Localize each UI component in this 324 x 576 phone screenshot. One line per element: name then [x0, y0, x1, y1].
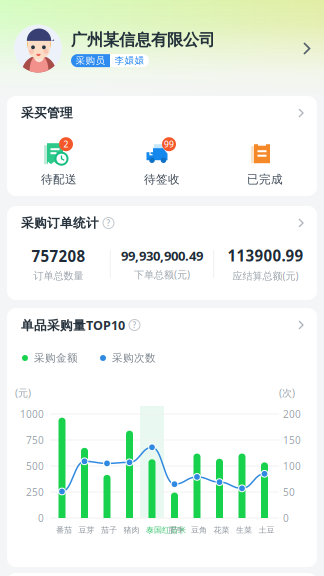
button[interactable]: 采购订单统计	[7, 206, 317, 240]
staticText: (次)	[279, 386, 295, 400]
staticText: 99,930,900.49	[121, 247, 203, 264]
staticText: 应结算总额(元)	[232, 269, 298, 283]
staticText: 猪肉	[123, 525, 139, 535]
staticText: 泰国红苗米	[146, 525, 186, 535]
staticText: 已完成	[247, 172, 283, 187]
button[interactable]: 单品采购量TOP10	[7, 308, 317, 342]
staticText: 采购员	[75, 55, 105, 67]
staticText: 99	[164, 138, 174, 150]
staticText: 豆角	[191, 525, 207, 535]
staticText: 200	[283, 407, 301, 421]
staticText: 757208	[31, 246, 85, 266]
staticText: 0	[38, 511, 44, 525]
staticText: 李嬛嬛	[114, 55, 144, 67]
staticText: 250	[26, 485, 44, 499]
button[interactable]: 99	[110, 135, 213, 191]
staticText: 2	[63, 138, 68, 150]
staticText: 花菜	[213, 525, 229, 535]
staticText: 肥牛	[168, 525, 184, 535]
staticText: 采购订单统计	[21, 215, 99, 231]
staticText: 采买管理	[21, 105, 73, 121]
staticText: 750	[26, 433, 44, 447]
staticText: 113900.99	[227, 245, 303, 266]
staticText: 500	[26, 459, 44, 473]
staticText: 下单总额(元)	[134, 268, 190, 281]
staticText: 番茄	[56, 525, 72, 535]
staticText: 待签收	[144, 172, 180, 187]
staticText: ?	[132, 319, 136, 330]
staticText: 茄子	[101, 525, 117, 535]
staticText: 100	[283, 459, 301, 473]
staticText: 待配送	[41, 172, 77, 187]
staticText: 150	[283, 433, 301, 447]
staticText: 采购次数	[112, 351, 156, 365]
staticText: ?	[106, 217, 110, 228]
button[interactable]: 广州某信息有限公司	[0, 0, 324, 97]
staticText: 单品采购量TOP10	[21, 316, 125, 333]
staticText: 生菜	[236, 525, 252, 535]
staticText: 1000	[20, 407, 44, 421]
button[interactable]: 采买管理	[7, 96, 317, 130]
staticText: 土豆	[258, 525, 274, 535]
staticText: 0	[283, 511, 289, 525]
button[interactable]: 2	[7, 135, 110, 191]
staticText: 订单总数量	[33, 269, 83, 282]
staticText: 广州某信息有限公司	[71, 30, 215, 50]
staticText: 豆芽	[78, 525, 94, 535]
staticText: (元)	[15, 386, 31, 400]
button[interactable]: 已完成	[213, 135, 316, 191]
staticText: 采购金额	[34, 351, 78, 365]
staticText: 50	[283, 485, 295, 499]
